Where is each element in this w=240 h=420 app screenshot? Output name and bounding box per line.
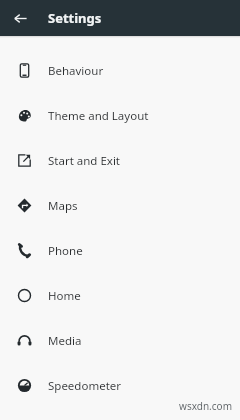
staticText: Theme and Layout <box>48 108 149 124</box>
button[interactable]: Phone <box>0 228 240 273</box>
button[interactable]: Media <box>0 318 240 363</box>
staticText: Behaviour <box>48 63 104 79</box>
button[interactable]: Maps <box>0 183 240 228</box>
staticText: Phone <box>48 243 83 259</box>
staticText: Speedometer <box>48 378 122 394</box>
staticText: Settings <box>48 9 102 27</box>
staticText: wsxdn.com <box>179 399 232 413</box>
button[interactable]: Start and Exit <box>0 138 240 183</box>
button[interactable]: Home <box>0 273 240 318</box>
button[interactable]: Speedometer <box>0 363 240 408</box>
staticText: Home <box>48 288 81 304</box>
button[interactable]: Theme and Layout <box>0 93 240 138</box>
staticText: Media <box>48 333 82 349</box>
button[interactable]: Behaviour <box>0 48 240 93</box>
staticText: Start and Exit <box>48 153 121 169</box>
button[interactable]: Back <box>11 9 29 27</box>
staticText: Maps <box>48 198 78 214</box>
